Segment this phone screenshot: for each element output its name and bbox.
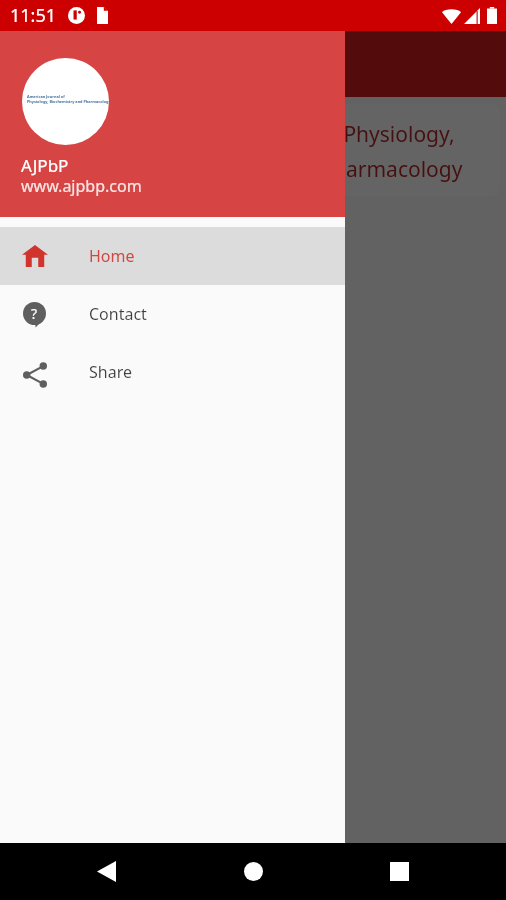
- staticText: www.ajpbp.com: [21, 175, 142, 197]
- button[interactable]: Share: [0, 343, 345, 401]
- staticText: American Journal of: [27, 94, 65, 99]
- staticText: 11:51: [10, 3, 57, 28]
- button[interactable]: Home: [0, 227, 345, 285]
- button[interactable]: Back: [82, 847, 131, 896]
- button[interactable]: Home: [229, 847, 278, 896]
- staticText: Share: [89, 361, 132, 383]
- button[interactable]: Recent apps: [375, 847, 424, 896]
- button[interactable]: American Journal of Physiology, Biochemi…: [8, 104, 500, 196]
- staticText: Contact: [89, 303, 147, 325]
- staticText: Physiology, Biochemistry and Pharmacolog…: [27, 99, 109, 104]
- button[interactable]: ?: [0, 285, 345, 343]
- staticText: American Journal of Physiology, Biochemi…: [143, 120, 463, 183]
- staticText: Home: [89, 245, 135, 267]
- staticText: ?: [31, 304, 38, 323]
- staticText: AJPbP: [21, 154, 69, 177]
